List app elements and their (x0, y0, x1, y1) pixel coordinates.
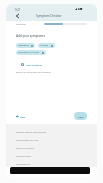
button[interactable]: Report an issue with this question (16, 71, 51, 74)
button[interactable]: Back (16, 115, 26, 118)
staticText: Instructions for Use (16, 138, 39, 141)
staticText: Back (20, 115, 26, 118)
staticText: Sensitivity to sound (18, 51, 40, 54)
button[interactable]: Back (11, 11, 23, 20)
staticText: Symptoms (16, 23, 26, 26)
button[interactable]: Medical device certification (16, 127, 97, 135)
button[interactable]: Privacy Policy (16, 151, 97, 159)
staticText: Interview ID (16, 162, 30, 165)
button[interactable]: Nausea (38, 43, 55, 48)
staticText: Terms of Service (16, 146, 35, 149)
staticText: Next (78, 115, 84, 118)
staticText: Medical device certification (16, 130, 47, 133)
button[interactable]: Instructions for Use (16, 135, 97, 143)
staticText: 9:41 (15, 8, 21, 12)
button[interactable]: Terms of Service (16, 143, 97, 151)
staticText: Privacy Policy (16, 154, 32, 157)
button[interactable]: Interview ID (16, 159, 97, 167)
staticText: Add symptom (26, 63, 42, 66)
button[interactable]: Headache (16, 43, 35, 48)
button[interactable]: Next (74, 112, 87, 120)
staticText: Headache (18, 44, 29, 47)
button[interactable]: Add symptom (16, 61, 47, 68)
button[interactable]: Sensitivity to sound (16, 50, 46, 55)
staticText: Add your symptoms (16, 34, 45, 38)
staticText: Nausea (40, 44, 49, 47)
staticText: Symptom Checker (36, 14, 62, 18)
